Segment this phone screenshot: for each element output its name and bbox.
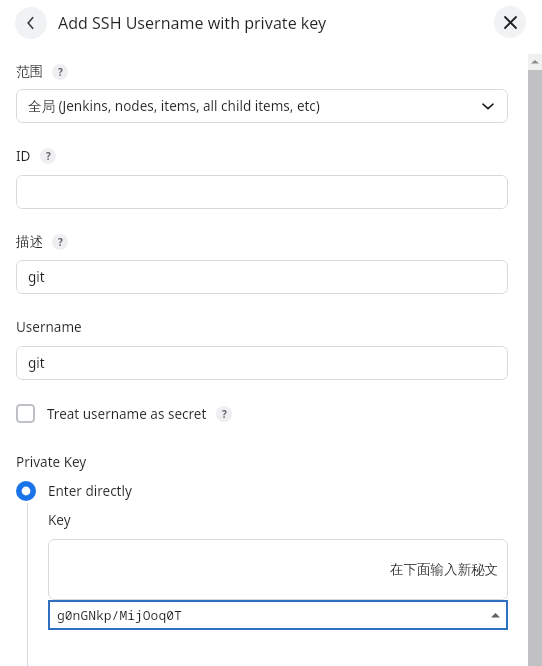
button[interactable]: Back (15, 7, 47, 39)
button[interactable]: Help (40, 148, 56, 164)
button[interactable]: Scroll up (528, 54, 542, 70)
staticText: 范围 (16, 63, 43, 80)
button[interactable]: git (16, 260, 508, 294)
button[interactable]: 全局 (Jenkins, nodes, items, all child ite… (16, 89, 508, 123)
button[interactable]: g0nGNkp/MijOoq0T (48, 600, 508, 630)
button[interactable] (16, 175, 508, 209)
staticText: ? (46, 149, 51, 163)
staticText: git (28, 268, 45, 286)
staticText: ? (58, 65, 63, 79)
staticText: 描述 (16, 233, 43, 250)
button[interactable]: git (16, 346, 508, 380)
staticText: ? (222, 407, 227, 421)
staticText: git (28, 354, 45, 372)
button[interactable]: 在下面输入新秘文 (48, 539, 508, 600)
button[interactable]: Help (52, 64, 68, 80)
staticText: g0nGNkp/MijOoq0T (57, 606, 182, 624)
staticText: Enter directly (48, 482, 132, 500)
staticText: 在下面输入新秘文 (390, 561, 498, 578)
button[interactable]: Treat username as secret (16, 404, 232, 423)
button[interactable]: Help (52, 234, 68, 250)
staticText: 全局 (Jenkins, nodes, items, all child ite… (28, 97, 320, 115)
staticText: Key (48, 511, 71, 529)
button[interactable]: Help (216, 406, 232, 422)
staticText: ? (58, 235, 63, 249)
staticText: Username (16, 318, 82, 336)
button[interactable]: Enter directly (16, 481, 132, 501)
staticText: Private Key (16, 453, 87, 471)
staticText: Add SSH Username with private key (58, 12, 327, 34)
staticText: Treat username as secret (47, 405, 207, 423)
staticText: ID (16, 147, 31, 165)
button[interactable]: Close (494, 6, 526, 38)
